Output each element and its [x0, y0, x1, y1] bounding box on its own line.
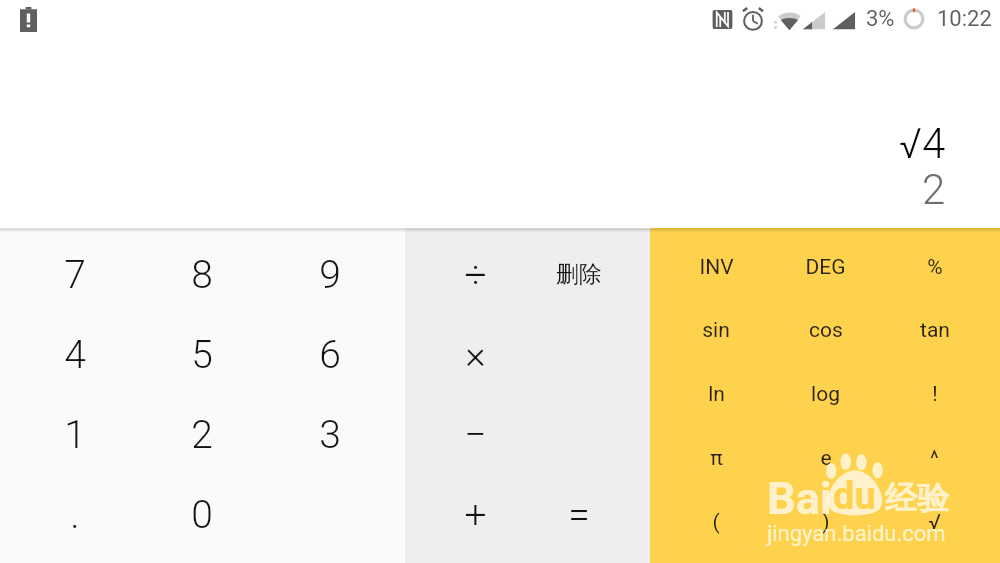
button[interactable]: Square root — [880, 490, 989, 554]
button[interactable]: INV — [661, 236, 771, 299]
staticText: 3 — [319, 412, 341, 458]
staticText: ^ — [930, 446, 939, 471]
staticText: + — [464, 492, 487, 538]
staticText: √ — [928, 510, 941, 535]
button[interactable]: 1 — [11, 395, 138, 475]
staticText: 0 — [191, 492, 213, 538]
staticText: ln — [708, 382, 725, 407]
staticText: 1 — [64, 412, 86, 458]
button[interactable]: DEG — [771, 236, 880, 299]
button[interactable]: e — [771, 426, 880, 490]
staticText: 5 — [191, 332, 213, 378]
staticText: 10:22 — [937, 6, 992, 32]
button[interactable]: 4 — [11, 315, 138, 395]
button[interactable]: 0 — [138, 475, 266, 555]
button[interactable]: Divide — [424, 234, 527, 315]
button[interactable]: cos — [771, 299, 880, 362]
button[interactable]: Equals — [527, 475, 631, 555]
staticText: 删除 — [556, 260, 602, 289]
staticText: 2 — [191, 412, 213, 458]
button[interactable]: Left parenthesis — [661, 490, 771, 554]
button[interactable]: Power — [880, 426, 989, 490]
staticText: 3% — [866, 6, 895, 32]
button[interactable]: Plus — [424, 475, 527, 555]
button[interactable]: Minus — [424, 395, 527, 475]
button[interactable]: 7 — [11, 234, 138, 315]
button[interactable]: sin — [661, 299, 771, 362]
staticText: log — [811, 382, 840, 407]
button[interactable]: log — [771, 362, 880, 426]
button[interactable]: Multiply — [424, 315, 527, 395]
staticText: du — [833, 474, 876, 519]
button[interactable]: Percent — [880, 236, 989, 299]
button[interactable]: 6 — [266, 315, 394, 395]
staticText: ) — [822, 510, 830, 535]
staticText: 9 — [319, 252, 341, 298]
staticText: e — [820, 446, 832, 471]
staticText: ( — [712, 510, 720, 535]
staticText: cos — [809, 318, 843, 343]
staticText: . — [70, 492, 80, 538]
button[interactable]: Decimal point — [11, 475, 138, 555]
staticText: ! — [932, 382, 938, 407]
button[interactable]: ln — [661, 362, 771, 426]
staticText: = — [568, 492, 590, 538]
staticText: π — [710, 446, 723, 471]
staticText: Bai — [767, 472, 832, 525]
staticText: √4 — [899, 119, 946, 168]
staticText: jingyan.baidu.com — [767, 521, 946, 547]
button[interactable]: 2 — [138, 395, 266, 475]
button[interactable]: Pi — [661, 426, 771, 490]
staticText: × — [465, 332, 486, 378]
button[interactable]: Factorial — [880, 362, 989, 426]
button[interactable]: tan — [880, 299, 989, 362]
staticText: ÷ — [464, 252, 487, 298]
staticText: 经验 — [885, 478, 949, 518]
staticText: 4 — [64, 332, 86, 378]
staticText: INV — [699, 255, 734, 280]
other: Battery — [20, 7, 37, 32]
button[interactable]: 5 — [138, 315, 266, 395]
button[interactable]: 8 — [138, 234, 266, 315]
staticText: sin — [702, 318, 730, 343]
button[interactable]: 9 — [266, 234, 394, 315]
staticText: 6 — [319, 332, 341, 378]
button[interactable]: Delete — [527, 234, 631, 315]
staticText: tan — [920, 318, 950, 343]
staticText: % — [927, 255, 943, 280]
staticText: DEG — [805, 255, 846, 280]
button[interactable]: 3 — [266, 395, 394, 475]
staticText: 2 — [922, 165, 946, 214]
staticText: 7 — [64, 252, 86, 298]
staticText: 8 — [191, 252, 213, 298]
button[interactable]: Right parenthesis — [771, 490, 880, 554]
staticText: − — [464, 412, 487, 458]
